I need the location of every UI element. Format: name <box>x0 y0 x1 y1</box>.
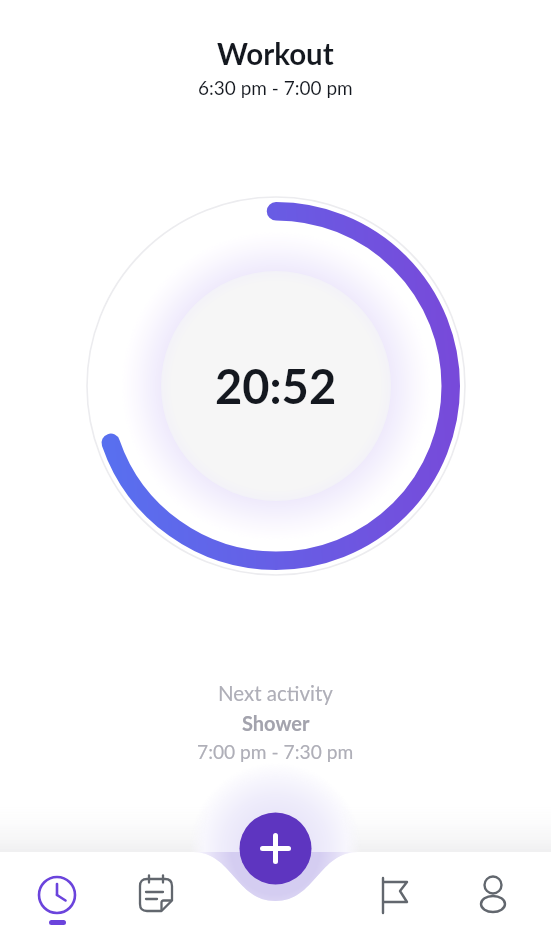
staticText: Next activity <box>218 681 333 706</box>
staticText: Workout <box>217 36 334 71</box>
staticText: Shower <box>242 711 310 735</box>
button[interactable]: Timer <box>10 852 104 950</box>
button[interactable]: Goals <box>347 852 441 950</box>
staticText: 7:00 pm - 7:30 pm <box>197 740 354 763</box>
button[interactable]: Profile <box>446 852 540 950</box>
button[interactable]: Add <box>240 813 312 885</box>
staticText: 20:52 <box>215 358 337 414</box>
button[interactable]: Notes <box>109 852 203 950</box>
staticText: 6:30 pm - 7:00 pm <box>198 76 353 99</box>
